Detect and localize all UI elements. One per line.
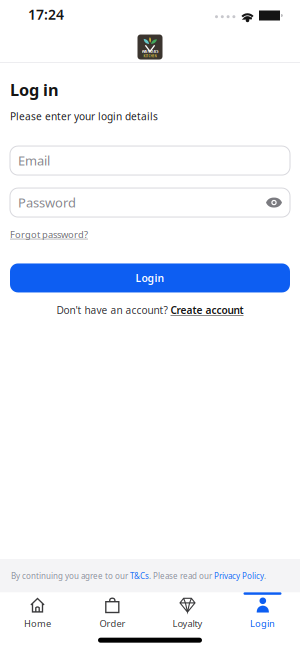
- staticText: Please enter your login details: [10, 110, 158, 123]
- button[interactable]: Order: [75, 597, 150, 630]
- staticText: By continuing you agree to our: [11, 571, 130, 581]
- staticText: Order: [99, 617, 125, 630]
- button[interactable]: Forgot password?: [10, 228, 88, 240]
- staticText: KITCHEN: [143, 54, 156, 58]
- staticText: . Please read our: [149, 571, 214, 581]
- button[interactable]: Login: [225, 597, 300, 630]
- staticText: Forgot password?: [10, 228, 88, 240]
- staticText: Home: [24, 617, 51, 630]
- staticText: Privacy Policy: [214, 571, 264, 581]
- staticText: Login: [250, 617, 275, 630]
- staticText: Password: [18, 194, 76, 211]
- staticText: T&Cs: [130, 571, 149, 581]
- button[interactable]: Loyalty: [150, 597, 225, 630]
- staticText: 17:24: [28, 5, 64, 24]
- staticText: WANDA'S: [141, 49, 158, 54]
- staticText: Create account: [170, 303, 243, 317]
- button[interactable]: Home: [0, 597, 75, 630]
- button[interactable]: Email: [10, 146, 290, 175]
- staticText: Log in: [10, 79, 59, 101]
- staticText: Email: [18, 152, 50, 169]
- staticText: Loyalty: [172, 617, 202, 630]
- staticText: Login: [135, 271, 164, 285]
- button[interactable]: Password: [10, 188, 290, 217]
- button[interactable]: T&Cs: [130, 571, 149, 581]
- staticText: Don't have an account?: [56, 303, 170, 317]
- button[interactable]: Create account: [170, 303, 243, 317]
- staticText: .: [264, 571, 266, 581]
- button[interactable]: Privacy Policy: [214, 571, 264, 581]
- button[interactable]: Show password: [265, 197, 282, 208]
- button[interactable]: Login: [10, 263, 290, 292]
